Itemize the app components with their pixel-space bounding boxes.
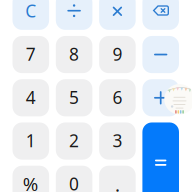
staticText: 9 bbox=[112, 42, 122, 65]
staticText: C bbox=[25, 0, 36, 22]
staticText: . bbox=[115, 172, 120, 192]
staticText: 1 bbox=[26, 129, 36, 152]
staticText: 5 bbox=[69, 86, 79, 109]
button[interactable]: Multiply bbox=[99, 0, 136, 30]
staticText: 2 bbox=[69, 129, 79, 152]
button[interactable]: 9 bbox=[99, 36, 136, 73]
staticText: 6 bbox=[112, 86, 122, 109]
staticText: 4 bbox=[26, 86, 36, 109]
button[interactable]: 6 bbox=[99, 79, 136, 116]
button[interactable]: 7 bbox=[12, 36, 49, 73]
button[interactable]: 1 bbox=[12, 122, 49, 160]
button[interactable]: 0 bbox=[56, 166, 92, 192]
button[interactable]: 2 bbox=[56, 122, 92, 160]
button[interactable]: 3 bbox=[99, 122, 136, 160]
button[interactable]: 8 bbox=[56, 36, 92, 73]
button[interactable]: Divide bbox=[56, 0, 92, 30]
staticText: % bbox=[23, 171, 39, 192]
button[interactable]: Percent bbox=[12, 166, 49, 192]
button[interactable]: Equals bbox=[142, 122, 179, 192]
staticText: 0 bbox=[69, 172, 79, 192]
staticText: 3 bbox=[112, 129, 122, 152]
staticText: 7 bbox=[26, 42, 36, 65]
button[interactable]: 4 bbox=[12, 79, 49, 116]
button[interactable]: Minus bbox=[142, 36, 179, 73]
button[interactable]: Plus bbox=[142, 79, 179, 116]
button[interactable]: Clear bbox=[12, 0, 49, 30]
staticText: 8 bbox=[69, 42, 79, 65]
button[interactable]: Decimal point bbox=[99, 166, 136, 192]
button[interactable]: Delete bbox=[142, 0, 179, 30]
button[interactable]: 5 bbox=[56, 79, 92, 116]
